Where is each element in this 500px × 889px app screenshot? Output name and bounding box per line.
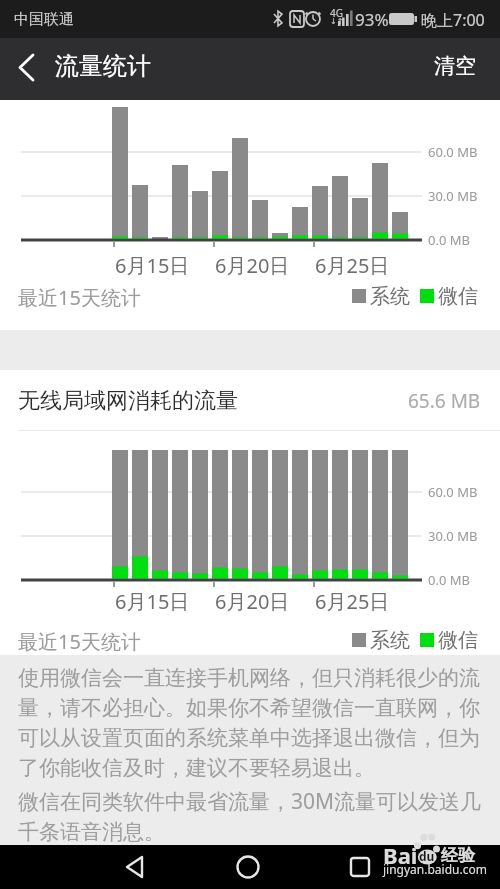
staticText: 晚上7:00 (421, 9, 485, 31)
staticText: 6月15日 (115, 252, 190, 277)
staticText: 4G (330, 6, 343, 20)
staticText: 6月20日 (215, 588, 290, 613)
staticText: 60.0 MB (428, 483, 478, 501)
staticText: jingyan.baidu.com (383, 861, 487, 877)
staticText: 30.0 MB (428, 527, 478, 545)
staticText: 系统 (370, 284, 410, 308)
staticText: 清空 (434, 53, 476, 79)
button[interactable] (115, 847, 155, 887)
staticText: 微信在同类软件中最省流量，30M流量可以发送几 千条语音消息。 (18, 787, 482, 845)
staticText: 6月20日 (215, 252, 290, 277)
staticText: 6月25日 (315, 252, 390, 277)
staticText: 0.0 MB (428, 231, 470, 249)
staticText: du (419, 848, 435, 864)
staticText: 最近15天统计 (18, 628, 141, 652)
staticText: 93% (355, 8, 389, 31)
staticText: 使用微信会一直连接手机网络，但只消耗很少的流 量，请不必担心。如果你不希望微信一… (18, 665, 480, 782)
staticText: 65.6 MB (408, 388, 481, 414)
staticText: 无线局域网消耗的流量 (18, 387, 238, 415)
staticText: 系统 (370, 628, 410, 652)
staticText: 0.0 MB (428, 571, 470, 589)
button[interactable] (340, 847, 380, 887)
staticText: 经验 (441, 845, 475, 866)
staticText: 30.0 MB (428, 187, 478, 205)
staticText: ↓↑ (330, 17, 344, 26)
button[interactable] (10, 50, 46, 86)
staticText: 6月25日 (315, 588, 390, 613)
staticText: 微信 (438, 284, 478, 308)
staticText: 流量统计 (55, 51, 151, 81)
staticText: 60.0 MB (428, 143, 478, 161)
button[interactable]: 清空 (424, 46, 490, 92)
staticText: Bai (383, 840, 418, 870)
staticText: 中国联通 (14, 10, 74, 29)
staticText: 微信 (438, 628, 478, 652)
button[interactable] (228, 847, 268, 887)
button[interactable]: 无线局域网消耗的流量 (0, 370, 500, 431)
staticText: 6月15日 (115, 588, 190, 613)
staticText: 最近15天统计 (18, 284, 141, 308)
